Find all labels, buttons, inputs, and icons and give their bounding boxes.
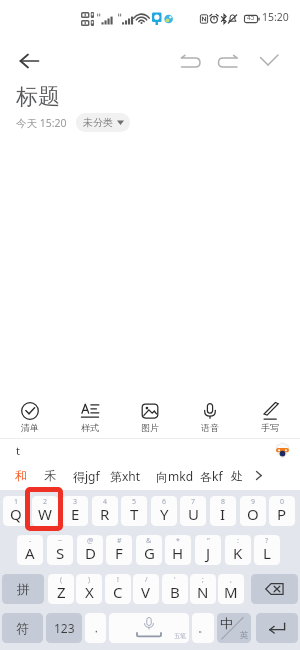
button[interactable]: 处	[225, 461, 249, 490]
staticText: '	[174, 575, 176, 585]
button[interactable]: 样式	[67, 393, 113, 433]
button[interactable]: Back	[12, 43, 48, 79]
staticText: 禾	[44, 468, 56, 483]
button[interactable]: ~	[47, 535, 73, 565]
staticText: "	[207, 536, 210, 546]
staticText: 3	[73, 497, 78, 507]
button[interactable]: 123	[46, 613, 82, 643]
button[interactable]: /	[133, 574, 159, 604]
button[interactable]: 清单	[7, 393, 53, 433]
button[interactable]: Chinese English toggle	[217, 613, 251, 643]
button[interactable]: 1	[3, 496, 29, 526]
staticText: L	[263, 543, 271, 563]
button[interactable]: 2	[32, 496, 58, 526]
staticText: 8	[221, 497, 226, 507]
button[interactable]: 。	[192, 613, 214, 643]
staticText: 中	[220, 615, 233, 631]
staticText: F	[115, 543, 123, 563]
staticText: K	[233, 543, 243, 563]
staticText: 0	[280, 497, 285, 507]
staticText: 符	[16, 620, 29, 636]
button[interactable]: ,	[218, 574, 244, 604]
button[interactable]: 图片	[127, 393, 173, 433]
staticText: 15:20	[262, 10, 289, 24]
staticText: 向mkd	[156, 468, 194, 484]
staticText: /	[145, 575, 148, 585]
button[interactable]: -	[17, 535, 43, 565]
staticText: 样式	[81, 422, 99, 433]
staticText: 123	[54, 620, 75, 636]
button[interactable]: @	[77, 535, 103, 565]
button[interactable]: 符	[2, 613, 43, 643]
button[interactable]: Redo	[215, 46, 245, 76]
staticText: )	[88, 575, 91, 585]
button[interactable]: ?	[254, 535, 280, 565]
button[interactable]: ，	[85, 613, 106, 643]
button[interactable]: 向mkd	[155, 461, 195, 490]
staticText: @	[87, 536, 94, 546]
staticText: ~	[58, 536, 63, 546]
button[interactable]: #	[106, 535, 132, 565]
staticText: G	[144, 543, 155, 563]
button[interactable]: 和	[8, 461, 34, 490]
button[interactable]: Space	[109, 613, 189, 643]
button[interactable]: 3	[62, 496, 88, 526]
staticText: 各kf	[200, 468, 223, 484]
staticText: P	[277, 504, 287, 524]
button[interactable]: :	[225, 535, 251, 565]
button[interactable]: Enter	[256, 613, 298, 643]
staticText: 9	[251, 497, 256, 507]
staticText: t	[16, 443, 20, 458]
staticText: 英	[240, 630, 249, 641]
staticText: C	[113, 582, 123, 602]
staticText: 5	[132, 497, 137, 507]
button[interactable]: 得jgf	[66, 461, 106, 490]
staticText: #	[117, 536, 122, 546]
staticText: 2	[43, 497, 48, 507]
staticText: 未分类	[83, 116, 113, 129]
button[interactable]: 各kf	[196, 461, 226, 490]
button[interactable]: 未分类	[76, 113, 130, 132]
staticText: 图片	[141, 422, 159, 433]
staticText: 6	[162, 497, 167, 507]
button[interactable]: 7	[180, 496, 206, 526]
staticText: 1	[14, 497, 19, 507]
staticText: 手写	[261, 422, 279, 433]
button[interactable]: 5	[121, 496, 147, 526]
button[interactable]: Done	[253, 46, 283, 76]
button[interactable]: More candidates	[249, 461, 267, 490]
button[interactable]: 拼	[2, 574, 44, 604]
button[interactable]: (	[48, 574, 74, 604]
button[interactable]: 9	[240, 496, 266, 526]
button[interactable]: 语音	[187, 393, 233, 433]
staticText: T	[130, 504, 139, 524]
button[interactable]: Backspace	[251, 574, 298, 604]
staticText: R	[100, 504, 110, 524]
button[interactable]: 6	[151, 496, 177, 526]
staticText: 4	[103, 497, 108, 507]
staticText: S	[56, 543, 65, 563]
button[interactable]: '	[162, 574, 188, 604]
button[interactable]: ;	[190, 574, 216, 604]
staticText: -	[29, 536, 32, 546]
button[interactable]: 4	[92, 496, 118, 526]
button[interactable]: "	[195, 535, 221, 565]
button[interactable]: 禾	[33, 461, 66, 490]
button[interactable]: *	[165, 535, 191, 565]
staticText: J	[206, 543, 211, 563]
staticText: E	[71, 504, 80, 524]
button[interactable]: )	[76, 574, 102, 604]
staticText: Z	[57, 582, 66, 602]
staticText: U	[188, 504, 199, 524]
button[interactable]: 手写	[247, 393, 293, 433]
button[interactable]: Undo	[178, 46, 208, 76]
staticText: 语音	[201, 422, 219, 433]
button[interactable]: &	[136, 535, 162, 565]
button[interactable]: 第xht	[101, 461, 149, 490]
button[interactable]: 8	[210, 496, 236, 526]
button[interactable]: 0	[269, 496, 295, 526]
staticText: M	[224, 582, 238, 602]
button[interactable]: Input method logo	[274, 442, 291, 459]
button[interactable]: !	[105, 574, 131, 604]
staticText: 和	[15, 468, 27, 483]
